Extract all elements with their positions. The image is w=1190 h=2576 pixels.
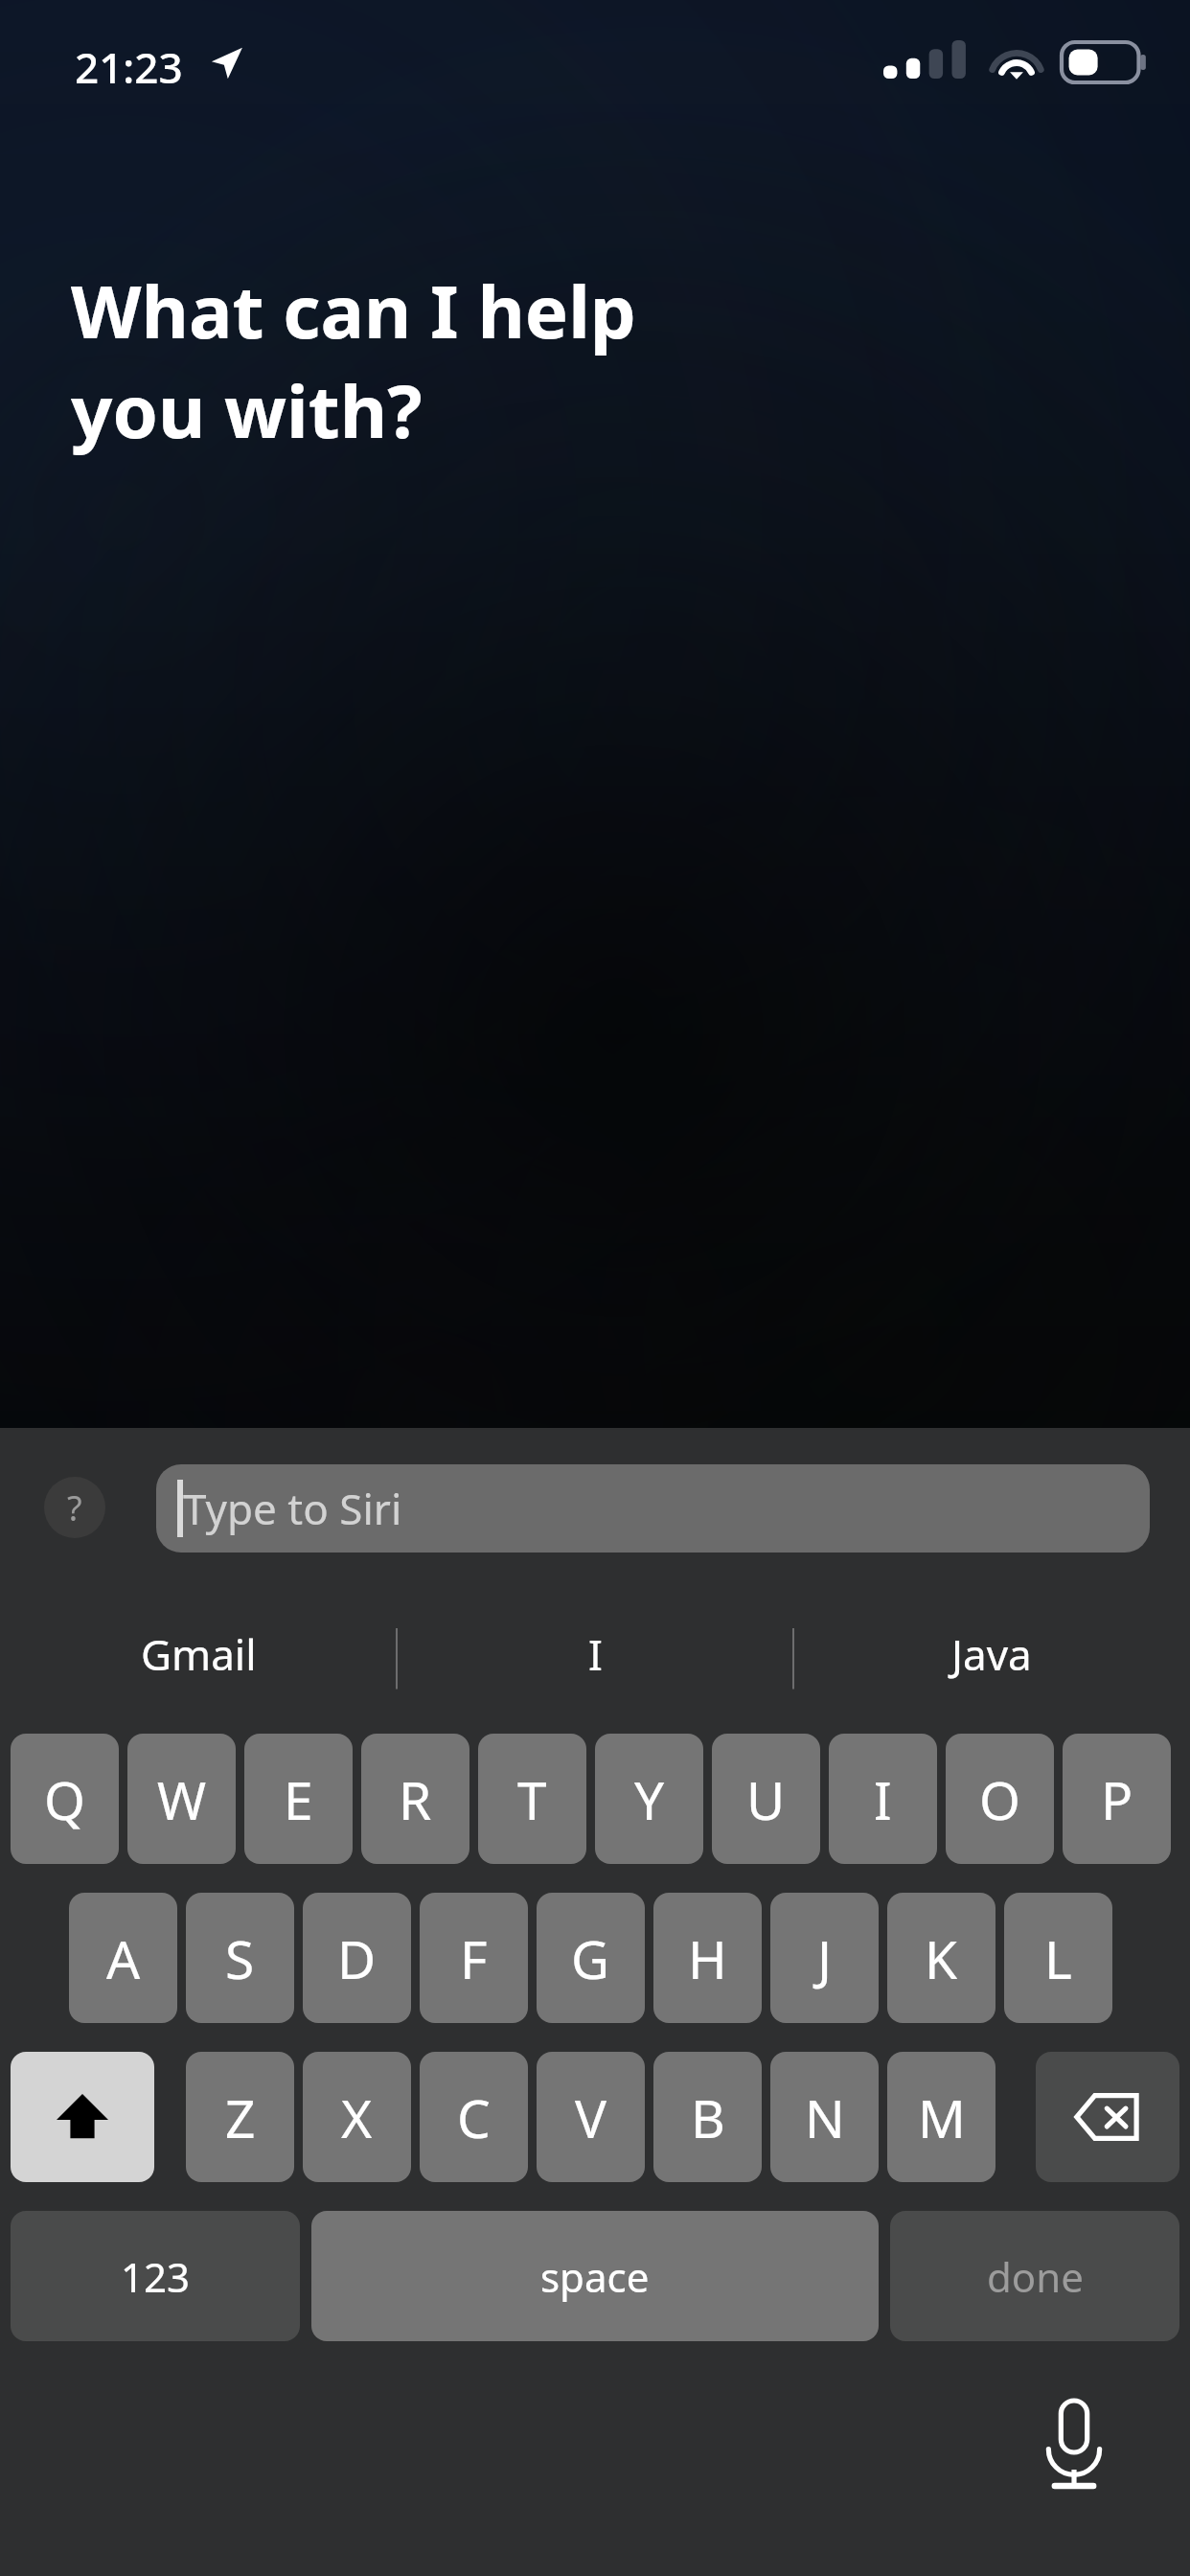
staticText: Type to Siri <box>183 1480 402 1537</box>
staticText: Y <box>634 1763 665 1835</box>
staticText: Gmail <box>141 1625 257 1683</box>
staticText: C <box>457 2081 491 2153</box>
button[interactable]: L <box>1004 1893 1112 2023</box>
staticText: S <box>225 1922 255 1994</box>
button[interactable]: Type to Siri <box>156 1464 1150 1552</box>
button[interactable]: G <box>537 1893 645 2023</box>
staticText: Java <box>951 1625 1032 1683</box>
staticText: W <box>157 1763 207 1835</box>
button[interactable]: V <box>537 2052 645 2182</box>
button[interactable]: S <box>186 1893 294 2023</box>
button[interactable]: J <box>770 1893 879 2023</box>
button[interactable]: Y <box>595 1734 703 1864</box>
button[interactable]: U <box>712 1734 820 1864</box>
button[interactable]: A <box>69 1893 177 2023</box>
staticText: T <box>517 1763 547 1835</box>
button[interactable]: I <box>829 1734 937 1864</box>
button[interactable]: Backspace <box>1036 2052 1179 2182</box>
button[interactable]: E <box>244 1734 353 1864</box>
staticText: F <box>460 1922 488 1994</box>
staticText: D <box>337 1922 377 1994</box>
button[interactable]: D <box>303 1893 411 2023</box>
staticText: B <box>691 2081 725 2153</box>
staticText: M <box>918 2081 966 2153</box>
staticText: Q <box>44 1763 85 1835</box>
staticText: O <box>979 1763 1020 1835</box>
staticText: What can I help <box>71 261 636 360</box>
staticText: Z <box>225 2081 256 2153</box>
button[interactable]: X <box>303 2052 411 2182</box>
staticText: 123 <box>121 2249 191 2304</box>
staticText: R <box>399 1763 432 1835</box>
button[interactable]: M <box>887 2052 995 2182</box>
button[interactable]: Gmail <box>0 1608 397 1700</box>
button[interactable]: I <box>397 1608 793 1700</box>
button[interactable]: C <box>420 2052 528 2182</box>
staticText: done <box>987 2249 1084 2304</box>
staticText: ? <box>67 1484 82 1531</box>
staticText: L <box>1044 1922 1072 1994</box>
button[interactable]: H <box>653 1893 762 2023</box>
button[interactable]: F <box>420 1893 528 2023</box>
staticText: 21:23 <box>75 38 183 96</box>
button[interactable]: T <box>478 1734 586 1864</box>
staticText: J <box>817 1922 833 1994</box>
button[interactable]: Q <box>11 1734 119 1864</box>
staticText: H <box>688 1922 727 1994</box>
button[interactable]: Siri help <box>44 1477 105 1538</box>
staticText: K <box>925 1922 958 1994</box>
button[interactable]: space <box>311 2211 879 2341</box>
staticText: space <box>540 2249 650 2304</box>
staticText: I <box>588 1625 603 1683</box>
staticText: you with? <box>71 360 423 460</box>
staticText: U <box>746 1763 786 1835</box>
button[interactable]: done <box>890 2211 1179 2341</box>
button[interactable]: N <box>770 2052 879 2182</box>
button[interactable]: K <box>887 1893 995 2023</box>
button[interactable]: 123 <box>11 2211 300 2341</box>
staticText: G <box>571 1922 610 1994</box>
button[interactable]: R <box>361 1734 469 1864</box>
button[interactable]: Z <box>186 2052 294 2182</box>
staticText: E <box>284 1763 313 1835</box>
staticText: V <box>575 2081 607 2153</box>
button[interactable]: Java <box>793 1608 1190 1700</box>
button[interactable]: Dictate <box>1014 2386 1134 2507</box>
staticText: X <box>341 2081 373 2153</box>
button[interactable]: W <box>127 1734 236 1864</box>
staticText: P <box>1101 1763 1133 1835</box>
button[interactable]: Shift <box>11 2052 154 2182</box>
button[interactable]: O <box>946 1734 1054 1864</box>
button[interactable]: P <box>1063 1734 1171 1864</box>
staticText: N <box>805 2081 845 2153</box>
staticText: I <box>874 1763 892 1835</box>
staticText: A <box>106 1922 141 1994</box>
button[interactable]: B <box>653 2052 762 2182</box>
